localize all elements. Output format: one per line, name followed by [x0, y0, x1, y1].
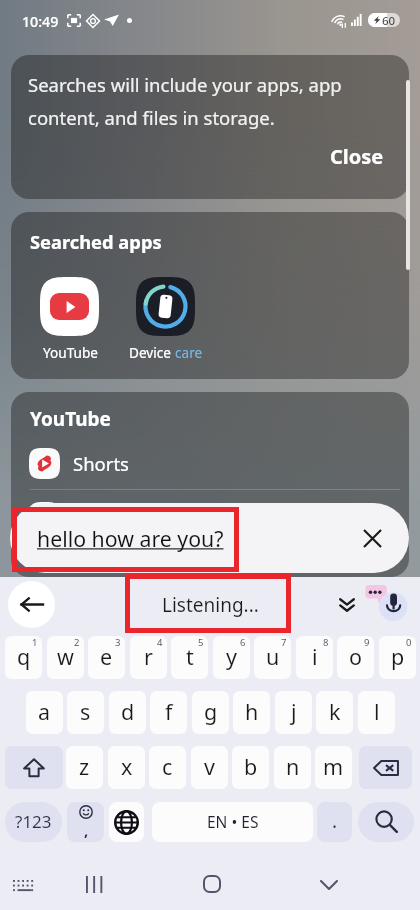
- button[interactable]: YouTube: [30, 277, 110, 372]
- staticText: x: [121, 752, 133, 781]
- staticText: c: [162, 752, 173, 781]
- staticText: 9: [364, 636, 370, 649]
- staticText: g: [204, 697, 218, 726]
- staticText: m: [323, 752, 344, 781]
- button[interactable]: k: [316, 691, 353, 734]
- button[interactable]: t: [171, 636, 208, 679]
- button[interactable]: ?123: [5, 802, 62, 842]
- staticText: 7: [281, 636, 287, 649]
- staticText: ?123: [15, 810, 52, 833]
- button[interactable]: u: [254, 636, 291, 679]
- button[interactable]: Close: [330, 143, 384, 170]
- staticText: k: [329, 697, 341, 726]
- staticText: 3: [115, 636, 121, 649]
- staticText: u: [266, 642, 280, 671]
- staticText: Shorts: [73, 451, 129, 476]
- button[interactable]: x: [108, 746, 145, 789]
- staticText: d: [121, 697, 135, 726]
- button[interactable]: Shorts: [11, 440, 409, 486]
- staticText: 8: [323, 636, 329, 649]
- button[interactable]: n: [274, 746, 311, 789]
- button[interactable]: Back: [8, 581, 55, 628]
- button[interactable]: EN • ES: [152, 802, 313, 842]
- staticText: f: [165, 697, 173, 726]
- button[interactable]: Recent apps: [74, 864, 114, 904]
- button[interactable]: v: [191, 746, 228, 789]
- staticText: b: [244, 752, 258, 781]
- staticText: v: [204, 752, 215, 781]
- staticText: care: [175, 343, 203, 362]
- button[interactable]: m: [315, 746, 352, 789]
- staticText: l: [374, 697, 380, 726]
- button[interactable]: [358, 802, 414, 842]
- button[interactable]: z: [66, 746, 103, 789]
- staticText: Searches will include your apps, app con…: [28, 72, 342, 131]
- staticText: 6: [240, 636, 246, 649]
- staticText: a: [38, 697, 51, 726]
- button[interactable]: [359, 746, 412, 789]
- staticText: y: [226, 642, 237, 671]
- button[interactable]: ,: [67, 802, 104, 842]
- staticText: r: [144, 642, 153, 671]
- staticText: z: [79, 752, 90, 781]
- button[interactable]: l: [358, 691, 395, 734]
- staticText: w: [57, 642, 74, 671]
- button[interactable]: o: [337, 636, 374, 679]
- button[interactable]: c: [149, 746, 186, 789]
- staticText: 5: [198, 636, 204, 649]
- button[interactable]: Searches will include your apps, app con…: [11, 55, 409, 199]
- button[interactable]: g: [192, 691, 229, 734]
- staticText: h: [245, 697, 259, 726]
- button[interactable]: Hide keyboard: [309, 865, 349, 905]
- staticText: EN • ES: [207, 811, 259, 832]
- button[interactable]: .: [317, 802, 352, 842]
- button[interactable]: Switch keyboard: [2, 864, 44, 906]
- button[interactable]: e: [88, 636, 125, 679]
- staticText: ,: [84, 820, 89, 840]
- button[interactable]: [5, 746, 63, 789]
- staticText: t: [186, 642, 194, 671]
- staticText: 2: [74, 636, 80, 649]
- button[interactable]: f: [150, 691, 187, 734]
- button[interactable]: Home: [192, 864, 232, 904]
- staticText: i: [312, 642, 318, 671]
- staticText: YouTube: [30, 406, 111, 432]
- staticText: p: [391, 642, 405, 671]
- button[interactable]: d: [109, 691, 146, 734]
- button[interactable]: Voice input: [363, 583, 413, 627]
- button[interactable]: w: [47, 636, 84, 679]
- staticText: s: [80, 697, 91, 726]
- button[interactable]: Device: [126, 277, 206, 372]
- staticText: o: [349, 642, 363, 671]
- button[interactable]: r: [130, 636, 167, 679]
- button[interactable]: j: [275, 691, 312, 734]
- staticText: hello how are you?: [37, 524, 224, 553]
- staticText: e: [100, 642, 113, 671]
- staticText: YouTube: [43, 343, 98, 362]
- staticText: Listening...: [162, 592, 259, 618]
- button[interactable]: b: [232, 746, 269, 789]
- button[interactable]: p: [379, 636, 416, 679]
- staticText: q: [17, 642, 31, 671]
- button[interactable]: Clear: [350, 516, 394, 560]
- staticText: 60: [382, 13, 396, 27]
- staticText: 4: [157, 636, 163, 649]
- staticText: 10:49: [22, 12, 59, 31]
- button[interactable]: s: [67, 691, 104, 734]
- staticText: 0: [406, 636, 412, 649]
- button[interactable]: Collapse: [324, 582, 370, 628]
- button[interactable]: a: [26, 691, 63, 734]
- button[interactable]: [109, 802, 144, 842]
- staticText: n: [286, 752, 300, 781]
- staticText: Searched apps: [30, 229, 162, 254]
- staticText: Device: [129, 343, 175, 362]
- button[interactable]: hello how are you?: [10, 503, 409, 573]
- button[interactable]: y: [213, 636, 250, 679]
- staticText: 1: [32, 636, 38, 649]
- button[interactable]: h: [233, 691, 270, 734]
- staticText: .: [332, 808, 338, 834]
- staticText: j: [291, 697, 297, 726]
- button[interactable]: q: [5, 636, 42, 679]
- button[interactable]: i: [296, 636, 333, 679]
